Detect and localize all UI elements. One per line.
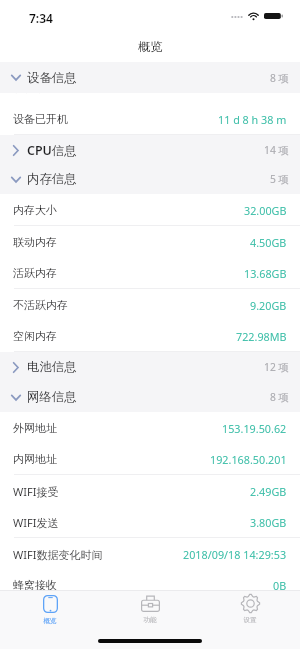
button[interactable]: 设置 — [200, 591, 300, 631]
staticText: 153.19.50.62 — [222, 421, 287, 436]
staticText: 空闲内存 — [13, 329, 57, 343]
staticText: 概览 — [138, 39, 163, 55]
staticText: iPhone — [251, 81, 287, 96]
staticText: 192.168.50.201 — [210, 452, 287, 467]
button[interactable]: 内存大小 — [0, 194, 300, 226]
staticText: 联动内存 — [13, 235, 57, 249]
button[interactable]: 电池信息 — [0, 352, 300, 382]
staticText: WIFI发送 — [13, 515, 59, 530]
staticText: 内网地址 — [13, 452, 57, 466]
staticText: 设备信息 — [27, 70, 77, 86]
button[interactable]: 活跃内存 — [0, 257, 300, 289]
button[interactable]: 设备名称 — [0, 72, 300, 104]
staticText: 设备名称 — [13, 81, 57, 95]
button[interactable]: 网络信息 — [0, 382, 300, 412]
staticText: 8 项 — [270, 71, 289, 85]
staticText: 概览 — [43, 617, 57, 625]
button[interactable]: 内网地址 — [0, 443, 300, 475]
staticText: 电池信息 — [27, 359, 77, 375]
staticText: 32.00GB — [244, 203, 287, 218]
staticText: 2.49GB — [250, 484, 287, 499]
button[interactable]: WIFI接受 — [0, 475, 300, 507]
staticText: 7:34 — [29, 10, 53, 26]
staticText: 8 项 — [270, 390, 289, 404]
staticText: 12 项 — [264, 360, 289, 374]
button[interactable]: 内存信息 — [0, 164, 300, 194]
button[interactable]: 联动内存 — [0, 226, 300, 258]
staticText: 0B — [273, 578, 287, 590]
button[interactable]: WIFI发送 — [0, 506, 300, 538]
button[interactable]: 设备已开机 — [0, 103, 300, 135]
staticText: 11 d 8 h 38 m — [218, 112, 287, 127]
staticText: 4.50GB — [250, 235, 287, 250]
staticText: 不活跃内存 — [13, 298, 68, 312]
staticText: 2018/09/18 14:29:53 — [183, 547, 287, 562]
staticText: 内存信息 — [27, 171, 77, 187]
staticText: 9.20GB — [250, 298, 287, 313]
button[interactable]: 蜂窝接收 — [0, 569, 300, 590]
staticText: 5 项 — [270, 172, 289, 186]
staticText: CPU信息 — [27, 142, 77, 159]
staticText: 外网地址 — [13, 421, 57, 435]
staticText: 设置 — [243, 616, 257, 624]
button[interactable]: WIFI数据变化时间 — [0, 538, 300, 570]
staticText: WIFI接受 — [13, 484, 59, 499]
staticText: 722.98MB — [236, 329, 287, 344]
staticText: 设备已开机 — [13, 112, 68, 126]
button[interactable]: 空闲内存 — [0, 320, 300, 352]
staticText: 功能 — [143, 616, 157, 624]
button[interactable]: 外网地址 — [0, 412, 300, 444]
staticText: 3.80GB — [250, 515, 287, 530]
staticText: 蜂窝接收 — [13, 578, 57, 590]
button[interactable]: 设备信息 — [0, 62, 300, 93]
staticText: 内存大小 — [13, 203, 57, 217]
button[interactable]: CPU信息 — [0, 135, 300, 165]
button[interactable]: 不活跃内存 — [0, 289, 300, 321]
staticText: 13.68GB — [244, 266, 287, 281]
staticText: 活跃内存 — [13, 266, 57, 280]
button[interactable]: 概览 — [0, 591, 100, 631]
staticText: WIFI数据变化时间 — [13, 547, 103, 562]
staticText: 14 项 — [264, 143, 289, 157]
button[interactable]: 功能 — [100, 591, 200, 631]
staticText: 网络信息 — [27, 389, 77, 405]
